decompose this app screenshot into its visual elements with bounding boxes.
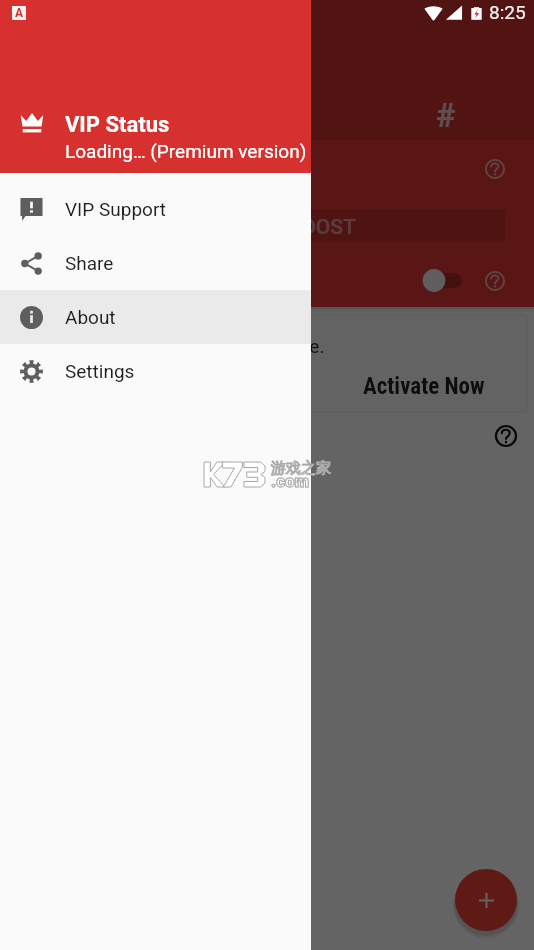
staticText: # — [436, 96, 456, 135]
staticText: Your free trial has expired. Please upgr… — [6, 335, 325, 357]
staticText: VIP Support — [65, 198, 167, 220]
staticText: Loading… (Premium version) — [65, 140, 307, 162]
button[interactable]: Activate Now — [351, 367, 497, 406]
button[interactable]: VIP Status — [0, 0, 311, 173]
staticText: .com — [271, 471, 310, 491]
button[interactable]: BOOST — [178, 209, 505, 242]
staticText: A — [15, 6, 24, 20]
button[interactable]: Settings — [0, 344, 311, 398]
staticText: .com — [271, 471, 310, 491]
button[interactable]: Help — [474, 148, 516, 190]
staticText: 游戏之家 — [271, 459, 331, 478]
staticText: About — [65, 306, 116, 328]
button[interactable]: Help — [486, 416, 526, 456]
staticText: Share — [65, 252, 114, 274]
button[interactable]: Add — [455, 869, 517, 931]
staticText: Activate Now — [363, 373, 485, 400]
button[interactable]: Toggle — [418, 264, 468, 297]
staticText: VIP Status — [65, 112, 170, 138]
staticText: 游戏之家 — [271, 459, 331, 478]
button[interactable] — [0, 0, 534, 950]
staticText: 8:25 — [489, 1, 526, 23]
button[interactable]: Share — [0, 236, 311, 290]
button[interactable]: Help — [474, 260, 516, 302]
button[interactable]: About — [0, 290, 311, 344]
staticText: Settings — [65, 360, 135, 382]
button[interactable]: VIP Support — [0, 182, 311, 236]
staticText: BOOST — [288, 215, 356, 240]
